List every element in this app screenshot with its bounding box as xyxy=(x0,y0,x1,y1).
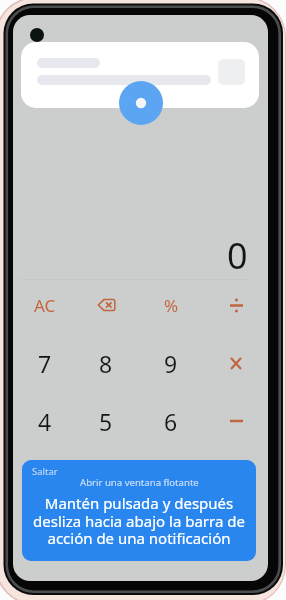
staticText: 4 xyxy=(38,406,52,437)
button[interactable]: 5 xyxy=(86,401,126,441)
button[interactable]: 6 xyxy=(151,401,191,441)
button[interactable]: 4 xyxy=(25,401,65,441)
staticText: 6 xyxy=(164,406,178,437)
staticText: AC xyxy=(34,294,56,317)
button[interactable]: App icon xyxy=(21,42,259,108)
staticText: 0 xyxy=(227,231,248,280)
button[interactable]: Minus xyxy=(216,401,256,441)
other: Divide xyxy=(230,299,243,312)
other: Touch indicator xyxy=(119,81,163,125)
button[interactable]: Delete xyxy=(86,285,126,325)
staticText: Mantén pulsada y después desliza hacia a… xyxy=(33,493,245,548)
staticText: 5 xyxy=(99,406,113,437)
other: Delete xyxy=(98,299,115,311)
staticText: Abrir una ventana flotante xyxy=(80,476,199,489)
button[interactable]: Saltar xyxy=(32,465,58,478)
button[interactable]: AC xyxy=(25,285,65,325)
staticText: 9 xyxy=(164,348,178,379)
other: Multiply xyxy=(231,358,241,369)
button[interactable]: 8 xyxy=(86,343,126,383)
button[interactable]: 7 xyxy=(25,343,65,383)
staticText: % xyxy=(164,294,179,317)
button[interactable]: 9 xyxy=(151,343,191,383)
button[interactable]: Multiply xyxy=(216,343,256,383)
other: Minus xyxy=(230,419,243,423)
button[interactable]: Divide xyxy=(216,285,256,325)
button[interactable]: % xyxy=(151,285,191,325)
staticText: 8 xyxy=(99,348,113,379)
staticText: 7 xyxy=(38,348,52,379)
